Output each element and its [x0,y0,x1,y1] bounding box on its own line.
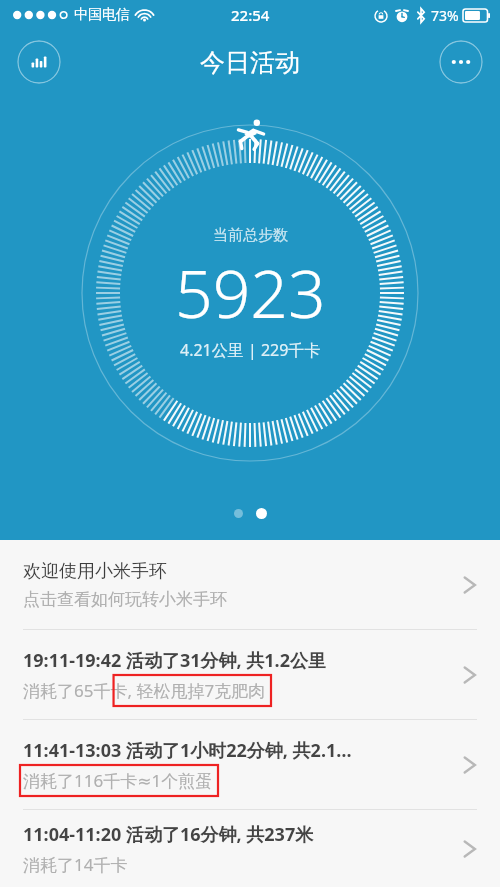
other: Open details [454,750,484,780]
staticText: 欢迎使用小米手环 [23,560,167,583]
staticText: 11:41-13:03 活动了1小时22分钟, 共2.1… [23,738,352,763]
button[interactable]: Page 1 [234,509,243,518]
button[interactable]: Page 2 [256,508,267,519]
staticText: 消耗了116千卡≈1个煎蛋 [23,769,213,792]
button[interactable]: 11:04-11:20 活动了16分钟, 共237米 [0,810,500,887]
button[interactable]: Statistics [17,40,61,84]
staticText: 19:11-19:42 活动了31分钟, 共1.2公里 [23,648,326,673]
button[interactable]: More options [439,40,483,84]
staticText: 消耗了14千卡 [23,853,128,876]
staticText: 11:04-11:20 活动了16分钟, 共237米 [23,822,314,847]
staticText: 当前总步数 [213,226,288,245]
staticText: 22:54 [231,5,270,25]
staticText: 73% [431,6,459,25]
staticText: 点击查看如何玩转小米手环 [23,589,227,610]
button[interactable]: 11:41-13:03 活动了1小时22分钟, 共2.1… [0,720,500,809]
button[interactable]: 欢迎使用小米手环 [0,540,500,629]
button[interactable]: 19:11-19:42 活动了31分钟, 共1.2公里 [0,630,500,719]
staticText: 4.21公里 | 229千卡 [180,339,321,361]
other: Open details [454,570,484,600]
staticText: 5923 [175,247,326,337]
other: Open details [454,660,484,690]
staticText: 中国电信 [74,6,130,24]
staticText: 今日活动 [200,47,300,78]
other: Open details [454,834,484,864]
staticText: 消耗了65千卡, 轻松甩掉7克肥肉 [23,679,266,702]
